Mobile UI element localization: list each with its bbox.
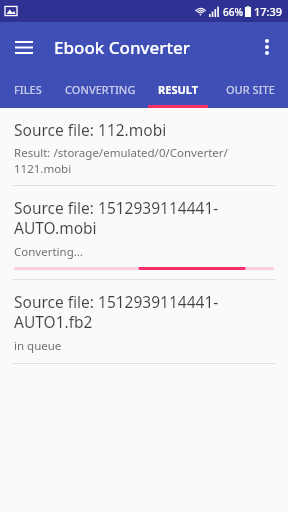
button[interactable]: RESULT: [144, 72, 212, 108]
button[interactable]: FILES: [0, 72, 56, 108]
staticText: Source file: 1512939114441- AUTO.mobi: [14, 197, 219, 239]
staticText: RESULT: [158, 82, 199, 97]
button[interactable]: OUR SITE: [212, 72, 288, 108]
button[interactable]: CONVERTING: [56, 72, 144, 108]
staticText: OUR SITE: [226, 82, 275, 97]
button[interactable]: More options: [249, 29, 285, 65]
staticText: 17:39: [254, 4, 283, 19]
button[interactable]: Source file: 1512939114441- AUTO.mobi: [0, 186, 288, 279]
staticText: Ebook Converter: [54, 36, 190, 59]
button[interactable]: Open navigation drawer: [6, 29, 42, 65]
button[interactable]: Source file: 1512939114441- AUTO1.fb2: [0, 280, 288, 363]
staticText: Result: /storage/emulated/0/Converter/ 1…: [14, 145, 228, 176]
staticText: FILES: [14, 82, 42, 97]
staticText: 66%: [223, 5, 243, 19]
staticText: CONVERTING: [65, 82, 136, 97]
staticText: Converting...: [14, 244, 83, 260]
staticText: in queue: [14, 338, 62, 354]
button[interactable]: Source file: 112.mobi: [0, 108, 288, 185]
staticText: Source file: 112.mobi: [14, 119, 167, 140]
staticText: Source file: 1512939114441- AUTO1.fb2: [14, 291, 219, 333]
